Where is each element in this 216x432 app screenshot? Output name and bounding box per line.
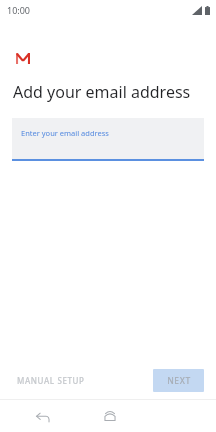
staticText: NEXT — [167, 375, 191, 387]
staticText: Enter your email address — [21, 128, 109, 138]
button[interactable]: NEXT — [153, 369, 204, 392]
staticText: MANUAL SETUP — [17, 375, 85, 386]
staticText: 10:00 — [7, 4, 31, 16]
staticText: Add your email address — [13, 81, 191, 103]
button[interactable]: Enter your email address — [12, 118, 204, 161]
button[interactable]: Home — [98, 404, 122, 428]
button[interactable]: MANUAL SETUP — [10, 369, 92, 392]
button[interactable]: Back — [31, 404, 55, 428]
